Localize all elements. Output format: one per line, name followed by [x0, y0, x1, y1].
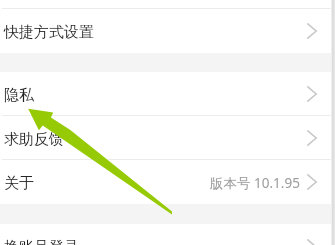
staticText: 换账号登录 [4, 238, 79, 245]
button[interactable]: 关于 [0, 160, 335, 204]
button[interactable] [0, 0, 335, 9]
button[interactable]: 求助反馈 [0, 116, 335, 160]
staticText: 关于 [4, 174, 34, 193]
button[interactable]: 隐私 [0, 72, 335, 116]
button[interactable]: 换账号登录 [0, 224, 335, 245]
button[interactable]: 快捷方式设置 [0, 9, 335, 53]
staticText: 隐私 [4, 86, 34, 105]
staticText: 快捷方式设置 [4, 23, 94, 42]
staticText: 版本号 10.1.95 [210, 174, 300, 192]
staticText: 求助反馈 [4, 130, 64, 149]
